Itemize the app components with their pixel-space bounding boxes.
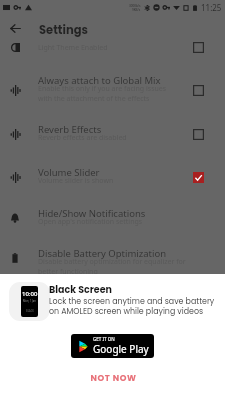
staticText: Disable Battery Optimization [38, 247, 167, 260]
staticText: Always attach to Global Mix [38, 74, 161, 87]
button[interactable]: Hide/Show Notifications [0, 192, 225, 232]
button[interactable]: Unchecked [193, 42, 204, 53]
staticText: Reverb effects are disabled [38, 133, 127, 143]
staticText: GET IT ON [93, 336, 115, 342]
button[interactable]: Light Theme Enabled [0, 27, 225, 57]
button[interactable]: Unchecked [193, 129, 204, 140]
button[interactable]: Checked [193, 172, 204, 183]
staticText: Hide/Show Notifications [38, 207, 146, 220]
staticText: Reverb Effects [38, 123, 102, 136]
staticText: Enable this only if you are facing issue… [38, 84, 167, 94]
staticText: Black Screen [49, 283, 112, 296]
staticText: Disable battery optimization for equaliz… [38, 257, 186, 267]
button[interactable]: Reverb Effects [0, 106, 225, 150]
button[interactable]: Volume Slider [0, 150, 225, 192]
button[interactable]: Unchecked [193, 85, 204, 96]
staticText: better functioning [38, 267, 98, 277]
staticText: BLACK [26, 309, 34, 313]
staticText: 300Kb/s [129, 4, 141, 8]
staticText: Volume Slider [38, 166, 100, 179]
staticText: Google Play [93, 342, 149, 356]
staticText: 10:00 [22, 290, 38, 298]
staticText: 11:25 [201, 2, 222, 13]
staticText: Open app's notification settings [38, 217, 143, 227]
staticText: 9KB/s [132, 8, 141, 12]
staticText: Mon, 1 Jan [23, 299, 36, 303]
button[interactable]: Get it on Google Play [71, 334, 154, 358]
button[interactable]: Back [5, 18, 25, 38]
staticText: Settings [39, 22, 88, 38]
button[interactable]: NOT NOW [78, 369, 149, 387]
staticText: with the attachment of the effects [38, 94, 150, 104]
staticText: NOT NOW [90, 372, 137, 384]
button[interactable]: Disable Battery Optimization [0, 232, 225, 275]
staticText: Lock the screen anytime and save battery… [49, 296, 215, 317]
staticText: Light Theme Enabled [38, 43, 108, 53]
button[interactable]: Always attach to Global Mix [0, 57, 225, 106]
